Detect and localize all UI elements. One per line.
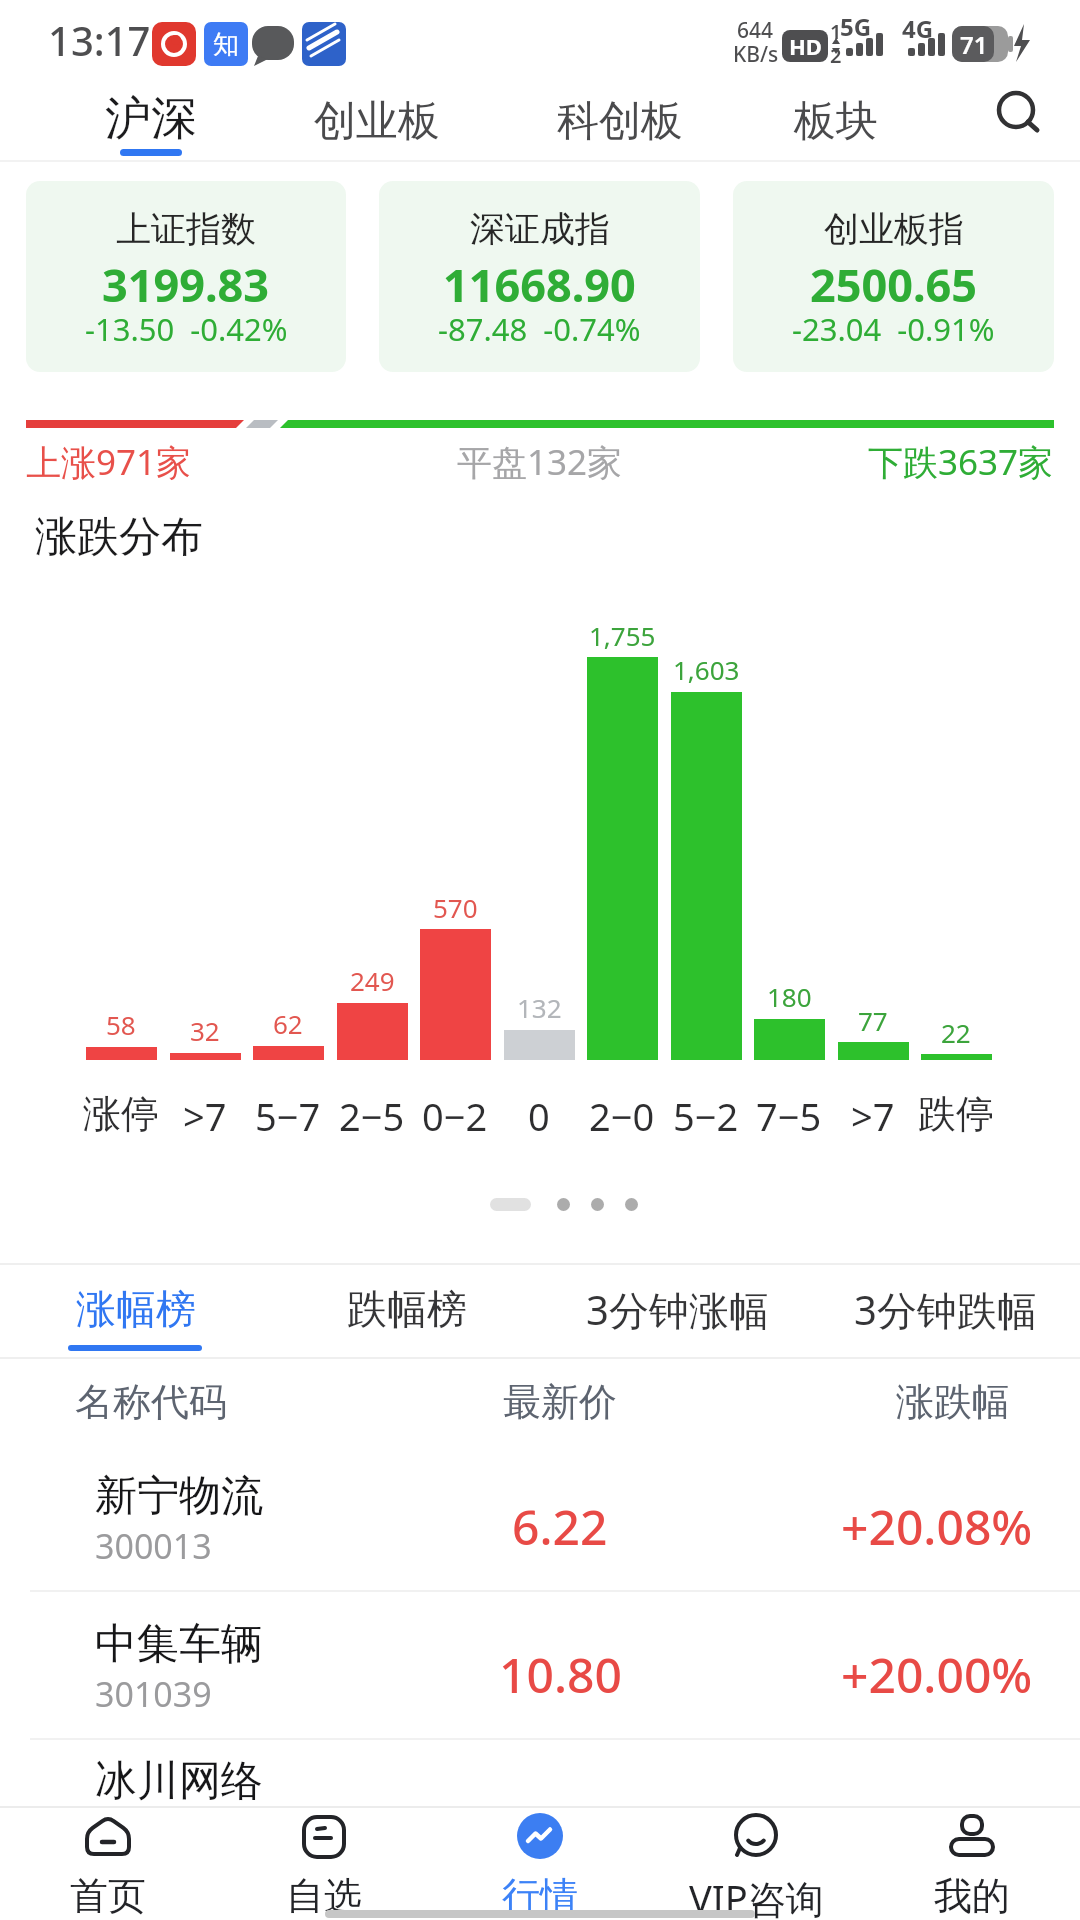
staticText: +20.08% — [841, 1494, 1033, 1559]
staticText: 300013 — [95, 1523, 212, 1569]
staticText: 180 — [767, 979, 812, 1014]
button[interactable]: 深证成指 — [379, 181, 700, 372]
button[interactable]: 科创板 — [545, 90, 695, 152]
button[interactable]: 创业板指 — [733, 181, 1054, 372]
staticText: 3199.83 — [102, 254, 270, 315]
staticText: 上涨971家 — [26, 438, 192, 486]
staticText: 涨跌分布 — [35, 511, 203, 564]
staticText: 中集车辆 — [95, 1618, 263, 1671]
button[interactable]: 自选 — [216, 1806, 432, 1920]
staticText: 58 — [106, 1007, 136, 1042]
button[interactable]: 板块 — [785, 90, 887, 152]
staticText: 冰川网络 — [95, 1755, 263, 1808]
staticText: 2−5 — [339, 1090, 405, 1138]
staticText: 300533 — [95, 1808, 212, 1854]
staticText: 沪深 — [105, 90, 197, 148]
staticText: 301039 — [95, 1671, 212, 1717]
staticText: 570 — [433, 890, 478, 925]
button[interactable]: 跌幅榜 — [340, 1270, 474, 1348]
staticText: 5G — [840, 10, 872, 40]
staticText: 3分钟跌幅 — [854, 1282, 1037, 1337]
staticText: 644 — [737, 16, 774, 44]
staticText: 3分钟涨幅 — [586, 1282, 769, 1337]
button[interactable]: 创业板 — [302, 90, 452, 152]
button[interactable]: 我的 — [864, 1806, 1080, 1920]
button[interactable]: 冰川网络 — [0, 1729, 1080, 1877]
staticText: 62 — [273, 1006, 303, 1041]
staticText: 板块 — [794, 95, 878, 148]
staticText: 1,603 — [673, 652, 740, 687]
staticText: 1,755 — [589, 618, 656, 653]
button[interactable]: 3分钟跌幅 — [848, 1270, 1042, 1348]
staticText: 71 — [960, 28, 988, 61]
button[interactable]: 沪深 — [95, 88, 207, 150]
button[interactable]: 上证指数 — [26, 181, 346, 372]
staticText: KB/s — [733, 40, 779, 68]
staticText: 13:17 — [48, 13, 151, 67]
staticText: 5−7 — [255, 1090, 321, 1138]
button[interactable]: 中集车辆 — [0, 1592, 1080, 1740]
button[interactable]: 新宁物流 — [0, 1444, 1080, 1592]
staticText: 2−0 — [589, 1090, 655, 1138]
staticText: 1 — [830, 18, 842, 42]
staticText: 0−2 — [422, 1090, 488, 1138]
button[interactable]: 涨幅榜 — [68, 1270, 204, 1348]
staticText: 科创板 — [557, 95, 683, 148]
staticText: 涨跌幅 — [896, 1378, 1010, 1426]
staticText: 涨幅榜 — [76, 1284, 196, 1334]
button[interactable]: 行情 — [432, 1806, 648, 1920]
staticText: 平盘132家 — [457, 438, 623, 486]
staticText: 77 — [858, 1003, 888, 1038]
staticText: 0 — [528, 1090, 550, 1138]
staticText: 上证指数 — [116, 207, 256, 251]
staticText: 知 — [213, 28, 239, 61]
staticText: 2500.65 — [810, 254, 978, 315]
staticText: 5−2 — [673, 1090, 739, 1138]
staticText: -13.50 -0.42% — [85, 308, 288, 350]
staticText: 132 — [517, 990, 562, 1025]
staticText: 11668.90 — [443, 254, 636, 315]
staticText: 2 — [830, 42, 842, 66]
staticText: >7 — [183, 1090, 227, 1138]
staticText: 深证成指 — [470, 207, 610, 251]
staticText: 我的 — [934, 1872, 1010, 1920]
staticText: 跌幅榜 — [347, 1284, 467, 1334]
staticText: 7−5 — [756, 1090, 822, 1138]
staticText: 22 — [941, 1015, 971, 1050]
staticText: 行情 — [502, 1872, 578, 1920]
staticText: 新宁物流 — [95, 1470, 263, 1523]
staticText: 6.22 — [512, 1494, 608, 1559]
staticText: 名称代码 — [75, 1378, 227, 1426]
button[interactable]: 3分钟涨幅 — [580, 1270, 774, 1348]
staticText: 自选 — [286, 1872, 362, 1920]
staticText: 跌停 — [918, 1090, 994, 1138]
staticText: -87.48 -0.74% — [438, 308, 641, 350]
staticText: 32 — [190, 1013, 220, 1048]
staticText: 10.80 — [499, 1642, 622, 1707]
staticText: 创业板指 — [824, 207, 964, 251]
staticText: 下跌3637家 — [868, 438, 1054, 486]
staticText: 249 — [350, 963, 395, 998]
staticText: +20.00% — [841, 1642, 1033, 1707]
staticText: 首页 — [70, 1872, 146, 1920]
staticText: >7 — [851, 1090, 895, 1138]
staticText: HD — [789, 31, 822, 61]
staticText: VIP咨询 — [689, 1872, 824, 1920]
button[interactable]: VIP咨询 — [648, 1806, 864, 1920]
staticText: 创业板 — [314, 95, 440, 148]
staticText: 最新价 — [503, 1378, 617, 1426]
button[interactable]: 首页 — [0, 1806, 216, 1920]
staticText: -23.04 -0.91% — [792, 308, 995, 350]
button[interactable] — [988, 84, 1052, 148]
staticText: 涨停 — [83, 1090, 159, 1138]
staticText: 4G — [902, 12, 934, 42]
